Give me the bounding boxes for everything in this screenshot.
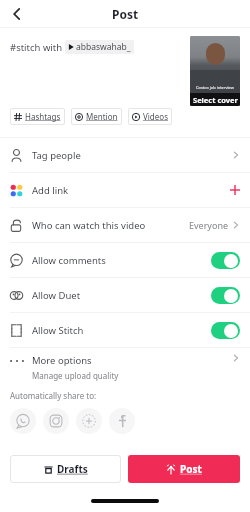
staticText: Mention: [86, 111, 118, 122]
button[interactable]: Facebook: [109, 408, 135, 434]
button[interactable]: [211, 322, 240, 339]
staticText: Post: [180, 462, 202, 476]
staticText: Select cover: [193, 95, 238, 105]
button[interactable]: Allow Duet: [0, 278, 250, 312]
button[interactable]: Post: [128, 455, 240, 483]
button[interactable]: Who can watch this video: [0, 208, 250, 242]
button[interactable]: Mention: [71, 108, 122, 125]
staticText: Add link: [32, 184, 69, 197]
staticText: Automatically share to:: [10, 390, 97, 401]
button[interactable]: More options: [0, 348, 250, 386]
button[interactable]: Add link: [0, 173, 250, 207]
staticText: #stitch with: [10, 41, 65, 54]
button[interactable]: WhatsApp: [10, 408, 36, 434]
staticText: Tag people: [32, 149, 81, 162]
staticText: Everyone: [189, 219, 229, 231]
button[interactable]: Instagram: [43, 408, 69, 434]
staticText: More options: [32, 354, 92, 367]
staticText: Who can watch this video: [32, 219, 146, 232]
button[interactable]: Tag people: [0, 138, 250, 172]
staticText: Allow Duet: [32, 289, 81, 302]
staticText: Allow comments: [32, 254, 106, 267]
button[interactable]: Drafts: [10, 455, 121, 483]
staticText: Allow Stitch: [32, 324, 84, 337]
staticText: Drafts: [57, 462, 88, 476]
button[interactable]: Add platform: [76, 408, 102, 434]
staticText: Costco job interview: [196, 85, 234, 90]
button[interactable]: [211, 252, 240, 269]
staticText: Manage upload quality: [32, 370, 119, 381]
button[interactable]: Allow Stitch: [0, 313, 250, 347]
button[interactable]: Hashtags: [10, 108, 65, 125]
button[interactable]: Videos: [128, 108, 172, 125]
staticText: abbaswahab_: [76, 41, 131, 53]
button[interactable]: abbaswahab_: [68, 41, 131, 53]
staticText: Post: [112, 6, 139, 22]
button[interactable]: Allow comments: [0, 243, 250, 277]
button[interactable]: [211, 287, 240, 304]
button[interactable]: Back: [4, 1, 30, 27]
staticText: Hashtags: [25, 111, 61, 122]
button[interactable]: Costco job interview: [190, 36, 240, 106]
staticText: Videos: [143, 111, 168, 122]
